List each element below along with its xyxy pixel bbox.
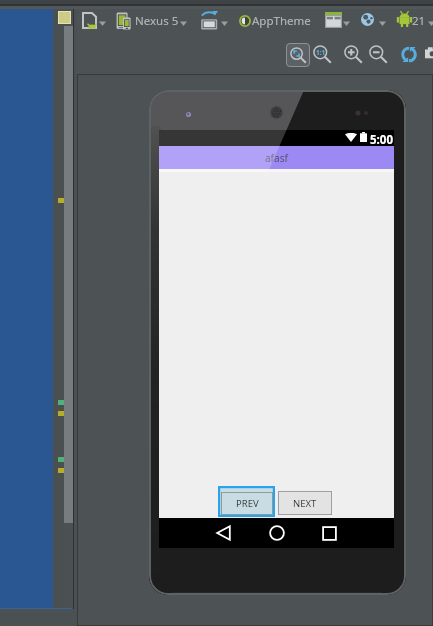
staticText: AppTheme [252,13,311,29]
button[interactable]: NEXT [278,491,332,515]
button[interactable]: Code annotation marker [58,400,65,405]
button[interactable]: Home [258,518,296,548]
button[interactable]: Zoom in [344,45,363,64]
staticText: PREV [236,497,259,510]
button[interactable]: Layout variants [325,12,342,28]
button[interactable]: Back [204,518,242,548]
button[interactable]: API level [398,11,411,27]
button[interactable]: Open dropdown [343,21,350,26]
staticText: 5:00 [370,132,393,148]
button[interactable]: Zoom to fit [286,43,310,67]
button[interactable]: Code annotation marker [58,457,65,462]
button[interactable]: Locale [361,13,374,26]
button[interactable]: Open dropdown [221,21,228,26]
button[interactable]: Code annotation marker [58,198,65,203]
button[interactable]: Code annotation marker [58,468,65,473]
button[interactable]: Rotate [200,11,219,30]
staticText: 21 [412,13,426,29]
button[interactable]: Zoom out [369,45,388,64]
button[interactable]: PREV [218,486,275,517]
button[interactable]: Recents [310,518,348,548]
staticText: Nexus 5 [135,13,179,29]
button[interactable]: Open dropdown [379,21,386,26]
button[interactable]: Code annotation marker [58,411,65,416]
staticText: 1:1 [316,48,326,57]
button[interactable]: Device [116,12,131,30]
button[interactable]: Screenshot [425,45,433,61]
button[interactable]: Open dropdown [180,21,187,26]
staticText: NEXT [293,497,317,510]
button[interactable]: Open dropdown [99,21,106,26]
button[interactable]: Theme [239,15,251,27]
button[interactable]: Open dropdown [428,21,433,26]
button[interactable]: Layout file [82,12,97,29]
staticText: afasf [265,151,288,165]
button[interactable]: Refresh [401,47,417,62]
button[interactable]: Actual size [313,45,332,64]
